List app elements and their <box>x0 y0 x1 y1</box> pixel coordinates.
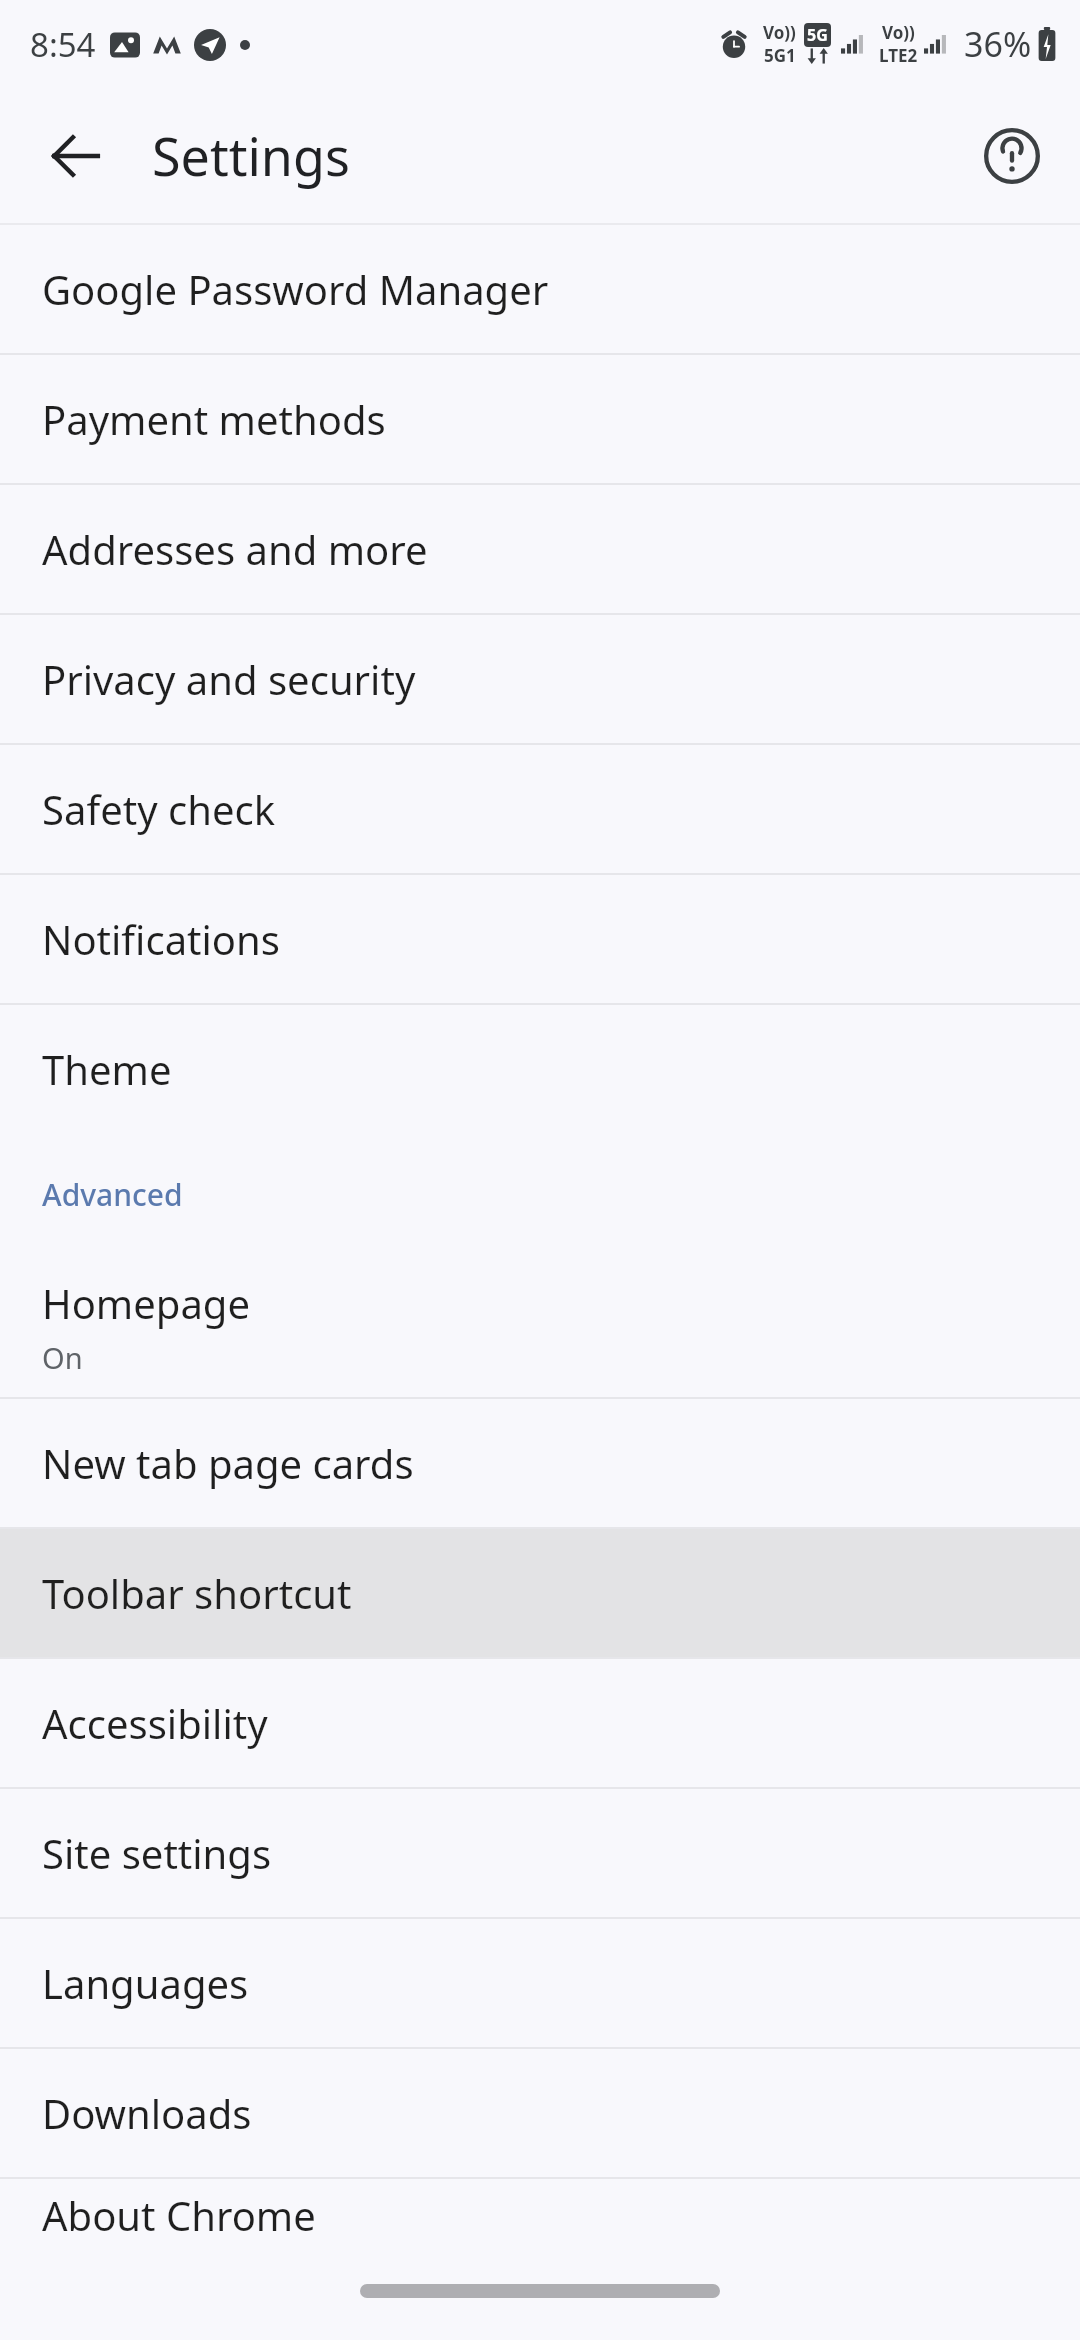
staticText: Site settings <box>42 1826 272 1880</box>
button[interactable]: Downloads <box>0 2049 1080 2177</box>
button[interactable]: Notifications <box>0 875 1080 1003</box>
button[interactable]: Google Password Manager <box>0 225 1080 353</box>
button[interactable]: Safety check <box>0 745 1080 873</box>
staticText: Safety check <box>42 782 275 836</box>
staticText: Payment methods <box>42 392 386 446</box>
staticText: New tab page cards <box>42 1436 414 1490</box>
button[interactable]: Homepage <box>0 1255 1080 1397</box>
staticText: About Chrome <box>42 2188 316 2242</box>
staticText: Homepage <box>42 1276 250 1330</box>
staticText: Notifications <box>42 912 280 966</box>
staticText: LTE2 <box>879 44 918 67</box>
staticText: Vo)) <box>882 21 915 44</box>
staticText: Languages <box>42 1956 249 2010</box>
staticText: Addresses and more <box>42 522 428 576</box>
staticText: Privacy and security <box>42 652 416 706</box>
button[interactable]: Theme <box>0 1005 1080 1133</box>
button[interactable]: Privacy and security <box>0 615 1080 743</box>
staticText: 36% <box>964 21 1032 67</box>
staticText: Google Password Manager <box>42 262 549 316</box>
staticText: On <box>42 1338 83 1377</box>
button[interactable]: About Chrome <box>0 2179 1080 2250</box>
button[interactable]: Languages <box>0 1919 1080 2047</box>
staticText: Downloads <box>42 2086 252 2140</box>
button[interactable]: Payment methods <box>0 355 1080 483</box>
staticText: Toolbar shortcut <box>42 1566 352 1620</box>
staticText: Settings <box>152 120 350 191</box>
staticText: Theme <box>42 1042 172 1096</box>
button[interactable]: Help and feedback <box>959 103 1064 208</box>
staticText: Vo)) <box>763 21 796 44</box>
staticText: 5G <box>807 24 828 46</box>
staticText: Accessibility <box>42 1696 268 1750</box>
button[interactable]: Addresses and more <box>0 485 1080 613</box>
button[interactable]: Toolbar shortcut <box>0 1529 1080 1657</box>
button[interactable]: Back <box>22 103 127 208</box>
staticText: 8:54 <box>30 22 96 67</box>
staticText: Advanced <box>42 1174 183 1215</box>
button[interactable]: Accessibility <box>0 1659 1080 1787</box>
button[interactable]: Site settings <box>0 1789 1080 1917</box>
button[interactable]: New tab page cards <box>0 1399 1080 1527</box>
staticText: 5G1 <box>764 44 796 67</box>
